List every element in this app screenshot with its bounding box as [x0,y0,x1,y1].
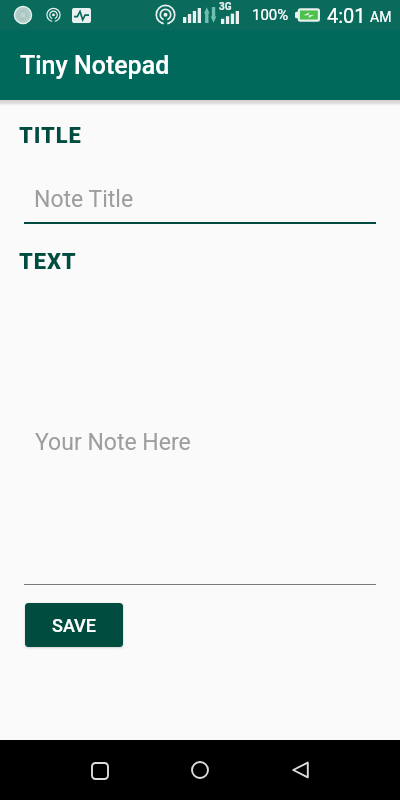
staticText: 100% [252,6,289,24]
button[interactable]: Note Title input [24,170,376,224]
staticText: 3G [219,1,232,13]
button[interactable]: SAVE [25,603,123,647]
staticText: SAVE [52,615,96,636]
staticText: Your Note Here [35,429,191,456]
staticText: TITLE [19,123,82,149]
staticText: TEXT [19,249,77,275]
button[interactable]: Your Note Here input [24,290,376,585]
button[interactable]: Recent apps [70,740,130,800]
button[interactable]: Back [270,740,330,800]
staticText: Note Title [34,186,134,213]
staticText: Tiny Notepad [20,51,170,80]
staticText: AM [370,9,392,25]
staticText: 4:01 [327,4,366,27]
button[interactable]: Home [170,740,230,800]
